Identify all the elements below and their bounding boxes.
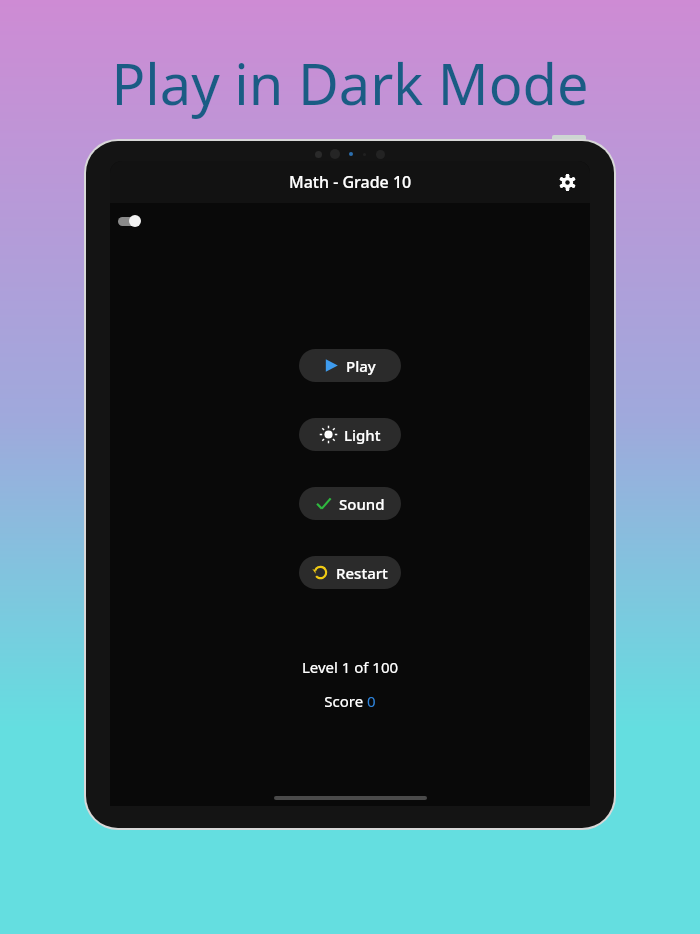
- staticText: Restart: [336, 563, 388, 583]
- button[interactable]: Light: [299, 418, 401, 451]
- button[interactable]: Settings: [552, 167, 582, 197]
- button[interactable]: Toggle: [112, 208, 146, 234]
- button[interactable]: Sound: [299, 487, 401, 520]
- staticText: Score 0: [110, 691, 590, 711]
- staticText: Play: [346, 356, 376, 376]
- staticText: Play in Dark Mode: [0, 45, 700, 121]
- staticText: Level 1 of 100: [110, 657, 590, 677]
- button[interactable]: Restart: [299, 556, 401, 589]
- button[interactable]: Play: [299, 349, 401, 382]
- staticText: Sound: [339, 494, 385, 514]
- staticText: Math - Grade 10: [289, 171, 412, 193]
- staticText: Light: [344, 425, 381, 445]
